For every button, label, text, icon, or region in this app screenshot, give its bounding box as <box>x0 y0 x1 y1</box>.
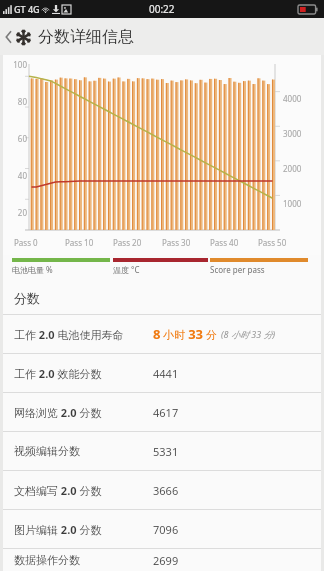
staticText: 视频编辑分数 <box>14 444 80 458</box>
button[interactable]: 工作 2.0 效能分数 <box>3 354 321 392</box>
staticText: Score per pass <box>210 264 265 275</box>
staticText: 分数详细信息 <box>38 27 134 47</box>
staticText: 7096 <box>153 522 179 537</box>
button[interactable]: 工作 2.0 电池使用寿命 <box>3 315 321 353</box>
button[interactable]: 文档编写 2.0 分数 <box>3 471 321 509</box>
staticText: 4000 <box>283 93 302 104</box>
staticText: 网络浏览 2.0 分数 <box>14 405 102 420</box>
staticText: 60 <box>7 133 27 144</box>
staticText: Pass 30 <box>162 237 191 248</box>
staticText: 4441 <box>153 366 179 381</box>
staticText: 数据操作分数 <box>14 553 80 567</box>
staticText: 图片编辑 2.0 分数 <box>14 522 102 537</box>
staticText: 2000 <box>283 163 302 174</box>
staticText: 1000 <box>283 198 302 209</box>
staticText: Pass 20 <box>113 237 142 248</box>
button[interactable]: 图片编辑 2.0 分数 <box>3 510 321 548</box>
staticText: 80 <box>7 96 27 107</box>
staticText: 100 <box>7 59 27 70</box>
staticText: Pass 0 <box>14 237 38 248</box>
staticText: 文档编写 2.0 分数 <box>14 483 102 498</box>
staticText: Pass 40 <box>210 237 239 248</box>
button[interactable]: Back <box>0 18 324 55</box>
staticText: 3666 <box>153 483 179 498</box>
staticText: Pass 10 <box>65 237 94 248</box>
staticText: 00:22 <box>149 2 175 16</box>
staticText: 8 小时 33 分 <box>153 325 217 343</box>
button[interactable]: 数据操作分数 <box>3 549 321 571</box>
button[interactable]: 视频编辑分数 <box>3 432 321 470</box>
staticText: 5331 <box>153 444 179 459</box>
staticText: 3000 <box>283 128 302 139</box>
staticText: 分数 <box>14 290 40 306</box>
staticText: 工作 2.0 电池使用寿命 <box>14 327 124 342</box>
staticText: 电池电量 % <box>12 264 53 275</box>
staticText: 4617 <box>153 405 179 420</box>
staticText: (8 小时 33 分) <box>221 328 276 340</box>
staticText: 温度 °C <box>113 264 140 275</box>
staticText: 工作 2.0 效能分数 <box>14 366 102 381</box>
staticText: 2699 <box>153 553 179 568</box>
staticText: 40 <box>7 170 27 181</box>
staticText: 20 <box>7 207 27 218</box>
button[interactable]: 网络浏览 2.0 分数 <box>3 393 321 431</box>
staticText: GT 4G <box>14 3 40 15</box>
staticText: Pass 50 <box>258 237 287 248</box>
